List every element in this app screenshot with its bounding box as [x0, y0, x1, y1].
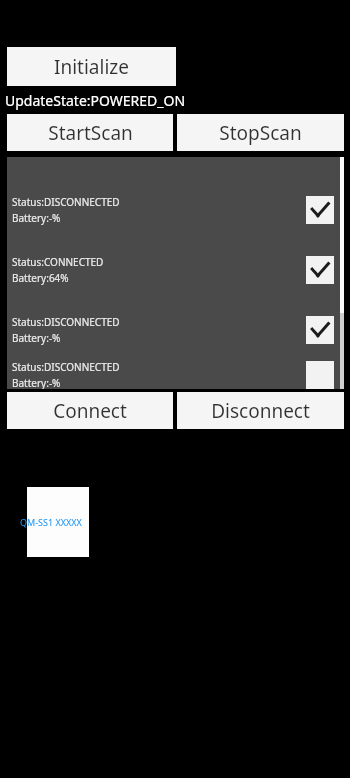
staticText: Status:CONNECTED	[12, 255, 104, 269]
staticText: Initialize	[54, 54, 129, 80]
staticText: UpdateState:POWERED_ON	[5, 91, 186, 110]
button[interactable]: StartScan	[7, 114, 173, 151]
staticText: Battery:-%	[12, 331, 61, 345]
button[interactable]: StopScan	[177, 114, 344, 151]
button[interactable]: Selected	[306, 196, 334, 224]
button[interactable]: Status:DISCONNECTED	[7, 360, 344, 389]
staticText: Connect	[53, 398, 127, 424]
button[interactable]: Selected	[306, 316, 334, 344]
staticText: StopScan	[219, 120, 302, 146]
button[interactable]: Status:DISCONNECTED	[7, 180, 344, 240]
staticText: Status:DISCONNECTED	[12, 195, 120, 209]
staticText: Battery:-%	[12, 376, 61, 389]
button[interactable]: Selected	[306, 256, 334, 284]
button[interactable]: Disconnect	[177, 392, 344, 429]
button[interactable]: Device QR code	[27, 487, 89, 557]
button[interactable]: Initialize	[7, 47, 176, 86]
staticText: Status:DISCONNECTED	[12, 315, 120, 329]
button[interactable]: Status:DISCONNECTED	[7, 300, 344, 360]
staticText: Disconnect	[211, 398, 310, 424]
staticText: Battery:64%	[12, 271, 69, 285]
staticText: Status:DISCONNECTED	[12, 360, 120, 374]
staticText: QM-SS1 XXXXX	[20, 516, 82, 528]
staticText: StartScan	[48, 120, 133, 146]
button[interactable]: Connect	[7, 392, 173, 429]
staticText: Battery:-%	[12, 211, 61, 225]
button[interactable]: Status:CONNECTED	[7, 240, 344, 300]
